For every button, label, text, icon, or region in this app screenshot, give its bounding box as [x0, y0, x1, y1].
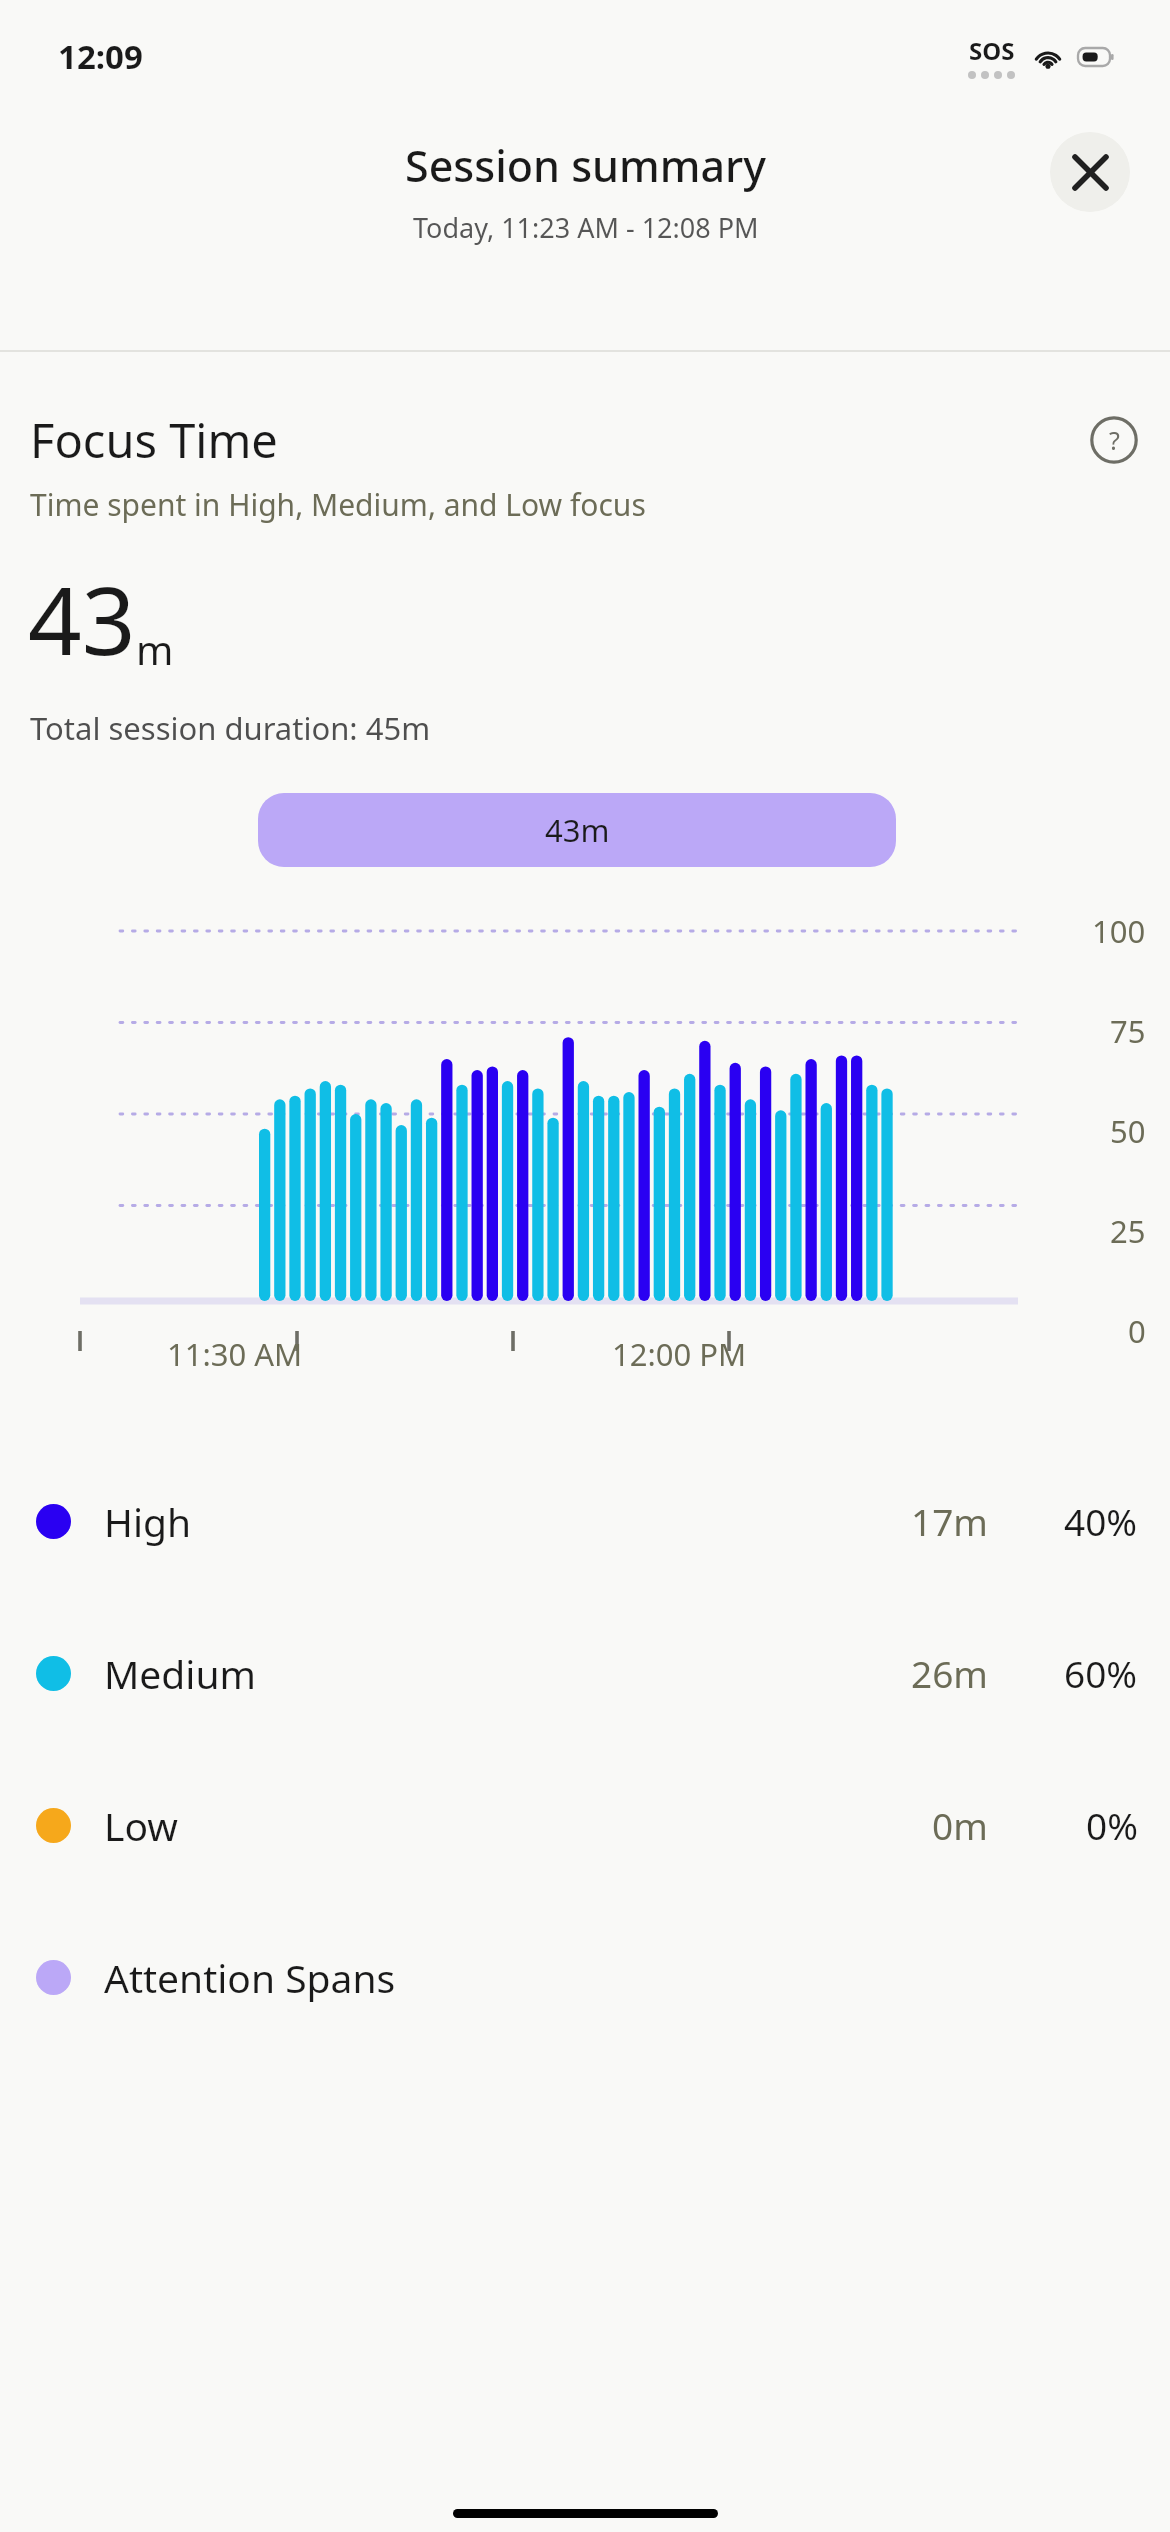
button[interactable]: Low	[0, 1749, 1170, 1901]
staticText: Time spent in High, Medium, and Low focu…	[30, 484, 646, 525]
staticText: High	[104, 1495, 192, 1548]
staticText: Focus Time	[30, 408, 278, 472]
staticText: Low	[104, 1799, 178, 1852]
staticText: 43	[28, 555, 136, 683]
button[interactable]: Help about Focus Time	[1090, 416, 1138, 464]
staticText: m	[136, 622, 174, 676]
button[interactable]: 43m	[258, 793, 896, 867]
button[interactable]: Close	[1050, 132, 1130, 212]
button[interactable]: High	[0, 1445, 1170, 1597]
button[interactable]: Attention Spans	[0, 1901, 1170, 2053]
staticText: 12:09	[58, 34, 143, 79]
staticText: 60%	[1064, 1648, 1138, 1698]
staticText: 12:00 PM	[612, 1333, 747, 1375]
staticText: SOS	[969, 34, 1015, 67]
button[interactable]: Medium	[0, 1597, 1170, 1749]
staticText: 0	[1128, 1310, 1146, 1352]
staticText: 25	[1110, 1210, 1146, 1252]
staticText: 26m	[911, 1648, 988, 1698]
staticText: 75	[1110, 1010, 1146, 1052]
staticText: Medium	[104, 1647, 256, 1700]
staticText: Today, 11:23 AM - 12:08 PM	[413, 209, 759, 246]
staticText: 17m	[911, 1496, 988, 1546]
staticText: 11:30 AM	[167, 1333, 303, 1375]
staticText: 40%	[1064, 1496, 1138, 1546]
staticText: 50	[1110, 1110, 1146, 1152]
staticText: Session summary	[405, 136, 766, 195]
staticText: 43m	[545, 809, 610, 851]
staticText: 0%	[1086, 1800, 1138, 1850]
staticText: Attention Spans	[104, 1951, 396, 2004]
staticText: 0m	[932, 1800, 988, 1850]
staticText: 100	[1092, 910, 1146, 952]
staticText: ?	[1109, 423, 1120, 457]
staticText: Total session duration: 45m	[30, 707, 431, 749]
